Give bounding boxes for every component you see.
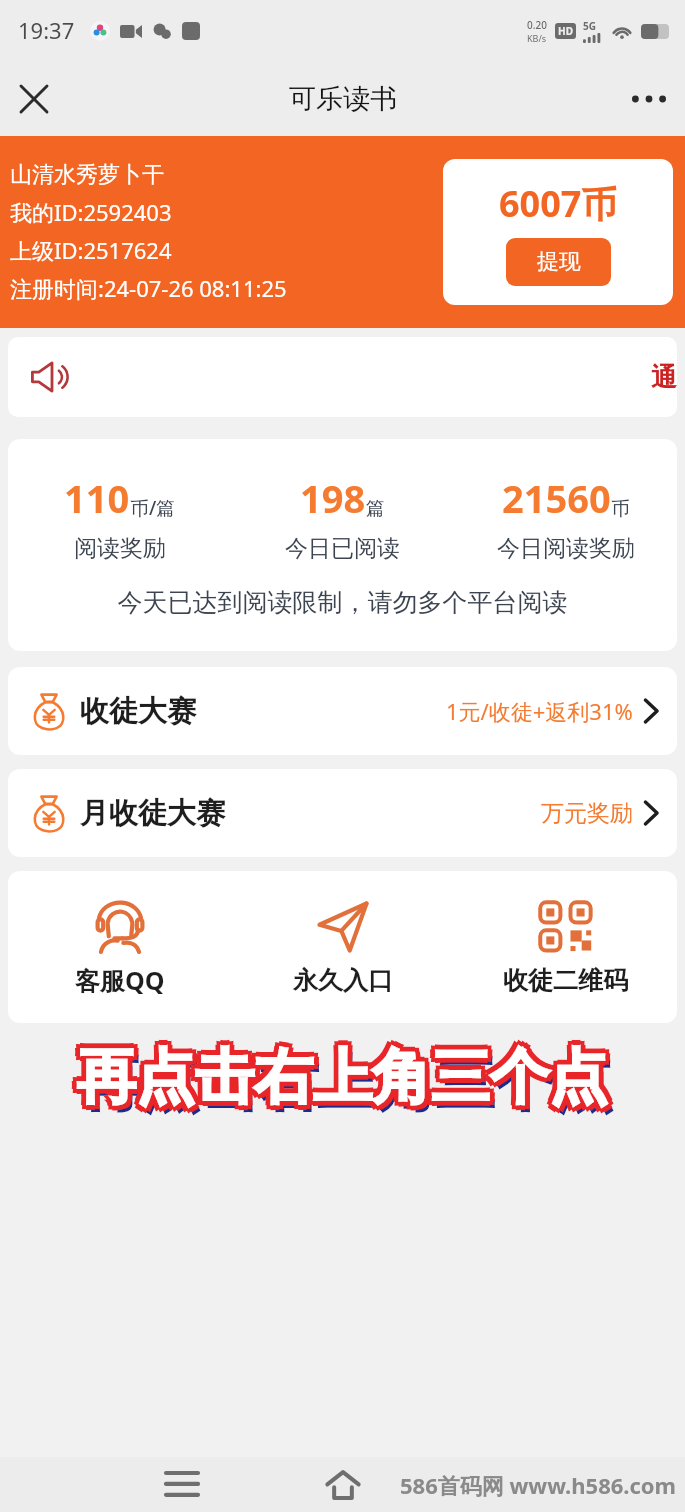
- staticText: 5G: [583, 19, 596, 33]
- staticText: 19:37: [18, 15, 75, 45]
- staticText: 山清水秀萝卜干: [10, 161, 164, 189]
- button[interactable]: 客服QQ: [8, 891, 231, 1003]
- staticText: 再点击右上角三个点: [4, 1036, 685, 1110]
- button[interactable]: More options: [621, 71, 677, 127]
- button[interactable]: 提现: [506, 238, 611, 286]
- staticText: 6007币: [499, 179, 618, 228]
- staticText: 再点击右上角三个点: [5, 1040, 685, 1114]
- staticText: 198: [300, 472, 366, 524]
- button[interactable]: 收徒大赛: [8, 667, 677, 755]
- staticText: 篇: [366, 497, 385, 521]
- staticText: 万元奖励: [541, 799, 633, 828]
- staticText: 再点击右上角三个点: [0, 1040, 685, 1114]
- staticText: 再点击右上角三个点: [0, 1036, 681, 1110]
- staticText: HD: [558, 24, 573, 38]
- staticText: 0.20: [527, 18, 547, 32]
- staticText: 永久入口: [293, 965, 393, 996]
- staticText: 再点击右上角三个点: [5, 1047, 685, 1121]
- staticText: 币/篇: [130, 495, 176, 521]
- button[interactable]: Close: [6, 71, 62, 127]
- staticText: 今日阅读奖励: [497, 534, 635, 563]
- button[interactable]: Recent apps: [152, 1457, 212, 1512]
- staticText: 1元/收徒+返利31%: [446, 696, 633, 726]
- staticText: 通知: [651, 361, 677, 394]
- staticText: 再点击右上角三个点: [0, 1035, 685, 1109]
- staticText: 110: [64, 472, 130, 524]
- staticText: 再点击右上角三个点: [0, 1040, 680, 1114]
- staticText: 再点击右上角三个点: [0, 1045, 685, 1119]
- staticText: 币: [611, 497, 630, 521]
- staticText: 注册时间:24-07-26 08:11:25: [10, 273, 287, 303]
- button[interactable]: Home: [313, 1457, 373, 1512]
- staticText: 收徒二维码: [503, 965, 628, 996]
- button[interactable]: 月收徒大赛: [8, 769, 677, 857]
- staticText: 收徒大赛: [80, 693, 196, 730]
- staticText: 今天已达到阅读限制，请勿多个平台阅读: [8, 587, 677, 618]
- staticText: 月收徒大赛: [80, 795, 225, 832]
- staticText: 客服QQ: [75, 963, 165, 997]
- staticText: 提现: [537, 248, 581, 276]
- staticText: 再点击右上角三个点: [4, 1044, 685, 1118]
- button[interactable]: 永久入口: [231, 893, 454, 1002]
- staticText: 再点击右上角三个点: [0, 1044, 681, 1118]
- staticText: 上级ID:2517624: [10, 235, 172, 265]
- button[interactable]: 收徒二维码: [454, 893, 677, 1002]
- staticText: KB/s: [527, 32, 547, 44]
- staticText: 今日已阅读: [285, 534, 400, 563]
- staticText: 21560: [502, 472, 611, 524]
- staticText: 我的ID:2592403: [10, 197, 172, 227]
- button[interactable]: 通知: [8, 337, 677, 417]
- staticText: 586首码网 www.h586.com: [400, 1470, 677, 1500]
- staticText: 阅读奖励: [74, 534, 166, 563]
- staticText: 可乐读书: [289, 82, 397, 116]
